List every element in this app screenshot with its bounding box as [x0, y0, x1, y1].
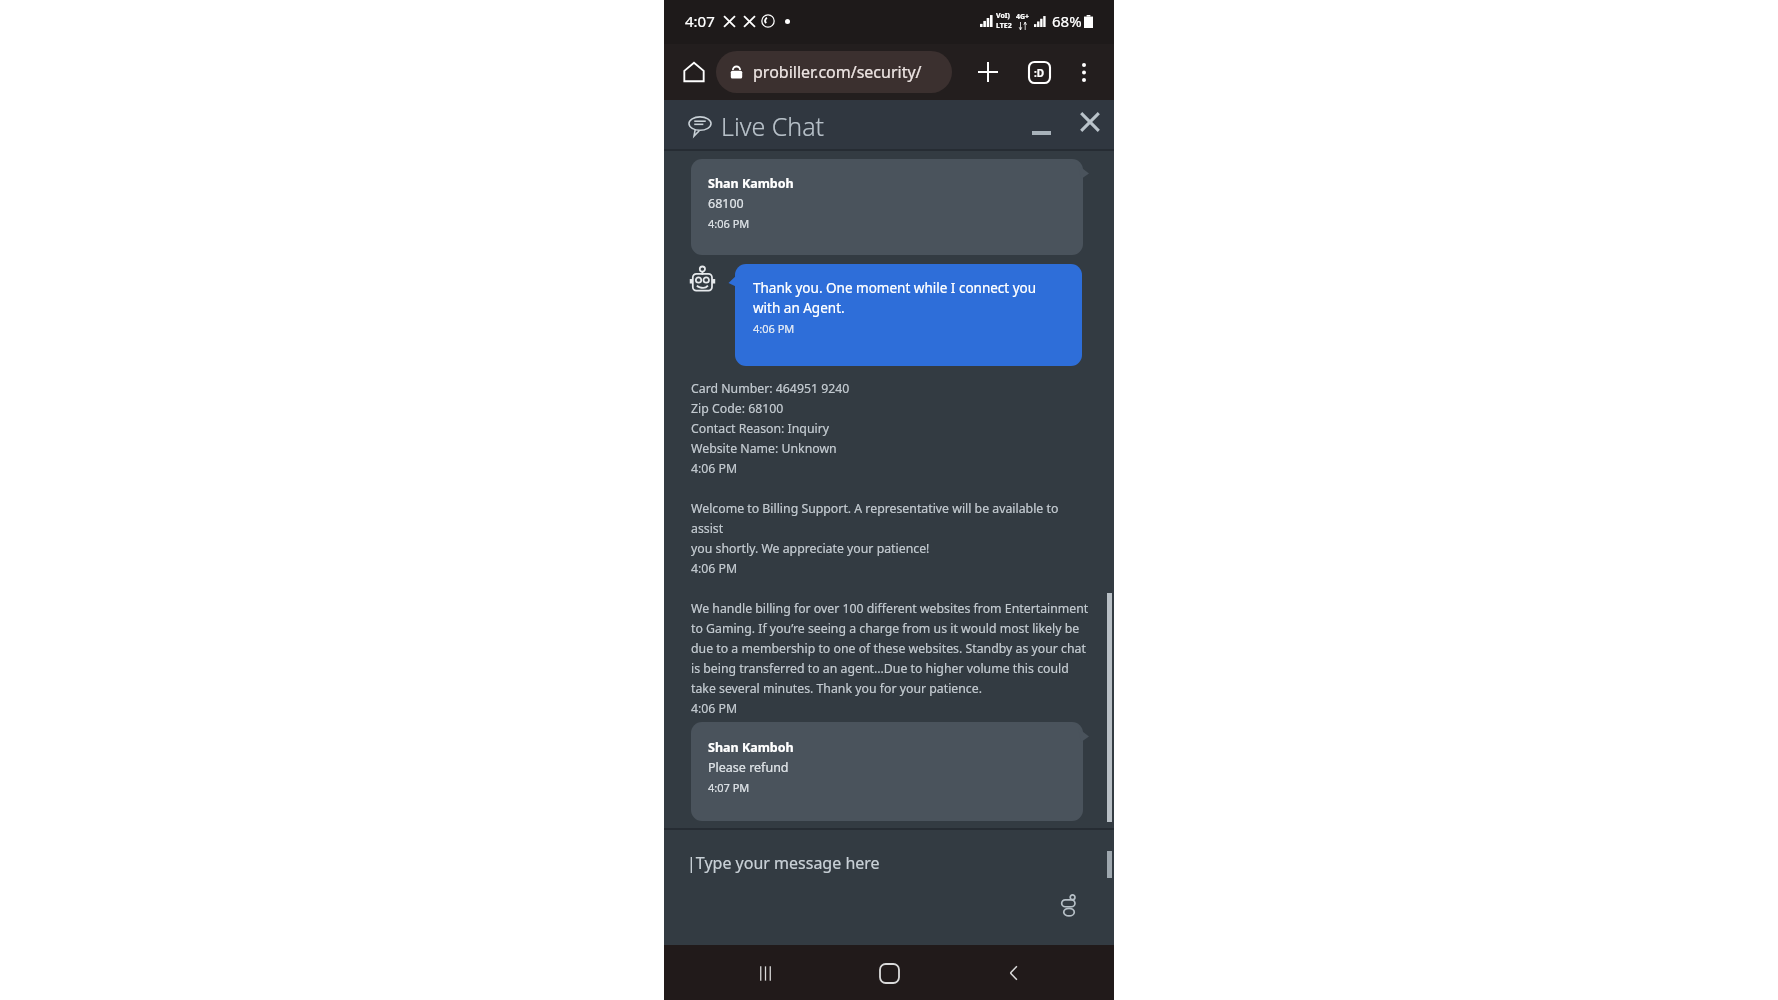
staticText: 4:07: [685, 11, 715, 31]
staticText: Live Chat: [721, 109, 825, 143]
staticText: :D: [1034, 66, 1045, 80]
staticText: Thank you. One moment while I connect yo…: [753, 277, 1037, 337]
staticText: Card Number: 464951 9240 Zip Code: 68100…: [691, 377, 1089, 717]
button[interactable]: Tabs: [1022, 55, 1056, 89]
button[interactable]: Minimize: [1024, 109, 1058, 143]
staticText: Shan Kamboh 68100 4:06 PM: [708, 172, 794, 232]
staticText: probiller.com/security/: [753, 61, 922, 83]
button[interactable]: Shan Kamboh 68100 4:06 PM: [691, 159, 1083, 255]
button[interactable]: Close: [1073, 105, 1107, 139]
staticText: 4G+: [1016, 12, 1030, 22]
staticText: VoI): [996, 11, 1010, 21]
staticText: |Type your message here: [687, 852, 880, 874]
staticText: LTE2: [996, 21, 1012, 31]
button[interactable]: More options: [1068, 56, 1100, 88]
button[interactable]: Shan Kamboh Please refund 4:07 PM: [691, 722, 1083, 821]
staticText: Shan Kamboh Please refund 4:07 PM: [708, 736, 794, 796]
button[interactable]: Thank you. One moment while I connect yo…: [735, 264, 1082, 366]
button[interactable]: Send: [1052, 890, 1084, 922]
button[interactable]: Back: [990, 949, 1038, 997]
staticText: 68%: [1052, 11, 1082, 31]
button[interactable]: Recents: [741, 949, 789, 997]
button[interactable]: Home: [674, 52, 714, 92]
button[interactable]: probiller.com/security/: [716, 51, 952, 93]
button[interactable]: New tab: [971, 55, 1005, 89]
button[interactable]: Home: [865, 949, 913, 997]
